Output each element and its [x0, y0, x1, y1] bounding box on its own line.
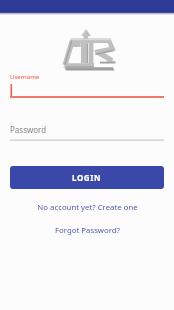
staticText: Username	[10, 73, 40, 81]
button[interactable]: Forgot Password?	[0, 224, 174, 236]
staticText: Forgot Password?	[55, 225, 120, 236]
staticText: Password	[10, 124, 47, 135]
button[interactable]: LOGIN	[10, 166, 164, 189]
button[interactable]: No account yet? Create one	[0, 201, 174, 213]
staticText: No account yet? Create one	[37, 202, 138, 213]
staticText: LOGIN	[72, 172, 102, 183]
